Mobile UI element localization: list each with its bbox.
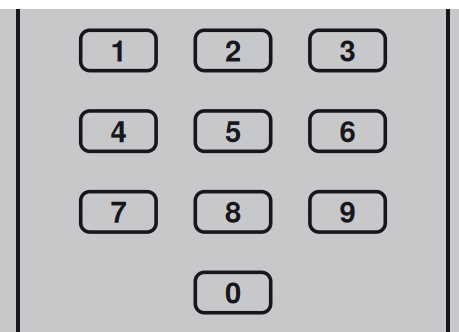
staticText: 1 [110,28,126,70]
button[interactable]: 4 [79,109,158,153]
button[interactable]: 5 [193,109,272,153]
staticText: 9 [340,190,356,232]
button[interactable]: 9 [308,190,387,234]
button[interactable]: 7 [79,190,158,234]
staticText: 2 [225,28,241,70]
staticText: 6 [340,109,356,151]
staticText: 0 [225,270,241,312]
button[interactable]: 2 [193,28,272,72]
button[interactable]: 6 [308,109,387,153]
staticText: 5 [225,109,241,151]
button[interactable]: 0 [193,271,272,315]
staticText: 3 [340,28,356,70]
staticText: 7 [110,190,126,232]
staticText: 4 [110,109,126,151]
button[interactable]: 3 [308,28,387,72]
button[interactable]: 1 [79,28,158,72]
button[interactable]: 8 [193,190,272,234]
staticText: 8 [225,190,241,232]
